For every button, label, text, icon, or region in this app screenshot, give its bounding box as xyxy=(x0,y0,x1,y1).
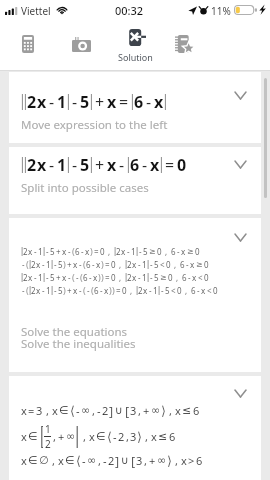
staticText: - xyxy=(68,272,71,283)
staticText: 2 xyxy=(118,429,125,444)
staticText: x xyxy=(73,285,78,296)
staticText: 6 xyxy=(130,154,140,176)
staticText: - xyxy=(76,403,80,418)
staticText: 6 xyxy=(193,403,200,418)
staticText: x xyxy=(154,91,164,113)
staticText: ∈ xyxy=(65,454,75,467)
staticText: 1 xyxy=(153,285,158,296)
staticText: x xyxy=(37,154,47,176)
staticText: ( xyxy=(26,258,29,271)
staticText: , xyxy=(53,429,56,444)
button[interactable]: Calculator xyxy=(14,22,41,66)
staticText: 00:32 xyxy=(115,3,144,18)
staticText: 3 xyxy=(130,403,137,418)
staticText: Solve the equations xyxy=(21,324,128,340)
staticText: ∈ xyxy=(59,404,69,417)
staticText: , xyxy=(145,429,148,444)
staticText: x xyxy=(28,272,33,283)
staticText: Viettel xyxy=(21,4,51,18)
staticText: - xyxy=(113,429,117,444)
staticText: ) xyxy=(63,258,66,271)
staticText: 1 xyxy=(38,272,43,283)
staticText: ⟨ xyxy=(76,453,81,468)
staticText: 0 xyxy=(100,246,105,257)
staticText: , xyxy=(176,272,179,283)
button[interactable]: 2 xyxy=(9,147,261,214)
staticText: ⟨ xyxy=(70,403,75,418)
staticText: , xyxy=(52,453,55,468)
staticText: 0 xyxy=(177,154,187,176)
staticText: x xyxy=(62,246,67,257)
staticText: - xyxy=(87,285,90,296)
staticText: - xyxy=(119,154,125,176)
button[interactable]: x xyxy=(9,376,261,480)
staticText: x xyxy=(62,272,67,283)
staticText: [ xyxy=(131,452,136,469)
staticText: ⟨ xyxy=(107,429,112,444)
staticText: 2 xyxy=(138,285,143,296)
staticText: - xyxy=(138,272,141,283)
staticText: x xyxy=(132,272,137,283)
staticText: + xyxy=(149,453,156,468)
staticText: - xyxy=(197,285,200,296)
staticText: - xyxy=(100,285,103,296)
staticText: 2 xyxy=(31,259,36,270)
staticText: 0 xyxy=(213,285,218,296)
staticText: 1 xyxy=(38,246,43,257)
staticText: , xyxy=(130,285,133,296)
staticText: - xyxy=(34,246,37,257)
staticText: 2 xyxy=(102,403,109,418)
staticText: + xyxy=(95,91,105,113)
staticText: ( xyxy=(72,271,75,284)
staticText: 0 xyxy=(122,285,127,296)
staticText: , xyxy=(98,453,101,468)
staticText: 0 xyxy=(166,259,171,270)
staticText: x xyxy=(181,246,186,257)
button[interactable]: Bookmarks xyxy=(170,22,197,66)
staticText: - xyxy=(34,272,37,283)
staticText: - xyxy=(54,259,57,270)
staticText: Split into possible cases xyxy=(21,180,149,196)
staticText: x xyxy=(121,246,126,257)
staticText: ) xyxy=(109,284,112,297)
staticText: , xyxy=(185,285,188,296)
staticText: - xyxy=(161,285,164,296)
staticText: ( xyxy=(91,284,94,297)
staticText: - xyxy=(146,91,152,113)
staticText: , xyxy=(144,453,147,468)
staticText: x xyxy=(181,453,187,468)
staticText: x xyxy=(36,285,41,296)
staticText: 5 xyxy=(80,154,90,176)
staticText: ( xyxy=(26,284,29,297)
staticText: < xyxy=(207,285,212,296)
staticText: + xyxy=(143,403,150,418)
staticText: 2 xyxy=(31,285,36,296)
staticText: - xyxy=(142,154,148,176)
staticText: ∞ xyxy=(81,404,91,417)
staticText: ≥ xyxy=(149,247,156,256)
staticText: 2 xyxy=(23,272,28,283)
staticText: x xyxy=(21,403,27,418)
staticText: ∅ xyxy=(39,454,49,467)
staticText: 5 xyxy=(154,259,159,270)
staticText: 1 xyxy=(142,272,147,283)
staticText: 6 xyxy=(180,259,185,270)
staticText: 6 xyxy=(75,246,80,257)
staticText: - xyxy=(186,259,189,270)
staticText: 2 xyxy=(45,437,51,451)
button[interactable]: Camera xyxy=(68,22,95,66)
staticText: , xyxy=(169,403,172,418)
staticText: 2 xyxy=(116,246,121,257)
staticText: x xyxy=(21,429,27,444)
staticText: 1 xyxy=(57,154,67,176)
button[interactable]: Solution xyxy=(111,22,159,70)
staticText: x xyxy=(201,285,206,296)
staticText: - xyxy=(79,259,82,270)
button[interactable]: 2 xyxy=(9,218,261,372)
staticText: 3 xyxy=(36,403,43,418)
staticText: ≤ xyxy=(182,404,192,417)
staticText: = xyxy=(28,403,35,418)
staticText: < xyxy=(160,259,165,270)
button[interactable]: 2 xyxy=(9,72,261,143)
staticText: x xyxy=(93,272,98,283)
